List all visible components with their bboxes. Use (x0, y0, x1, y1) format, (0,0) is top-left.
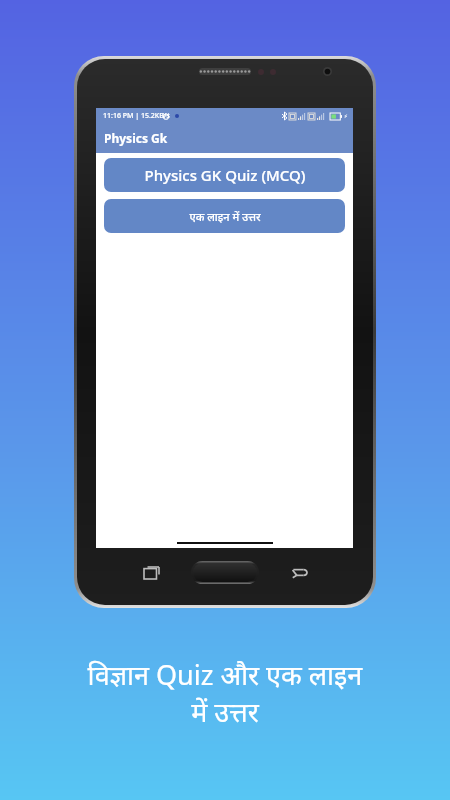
button[interactable]: Physics GK Quiz (MCQ) (104, 158, 345, 192)
staticText: Physics GK Quiz (MCQ) (144, 165, 306, 185)
staticText: 11:16 PM | 15.2KB/s (103, 111, 170, 121)
button[interactable]: Back (259, 557, 337, 587)
button[interactable]: एक लाइन में उत्तर (104, 199, 345, 233)
staticText: ⚡ (344, 113, 348, 119)
button[interactable]: Home (191, 561, 259, 584)
staticText: विज्ञान Quiz और एक लाइन में उत्तर (12, 656, 438, 730)
staticText: एक लाइन में उत्तर (189, 209, 261, 224)
staticText: Physics Gk (104, 130, 168, 146)
button[interactable]: Recents (113, 557, 191, 587)
